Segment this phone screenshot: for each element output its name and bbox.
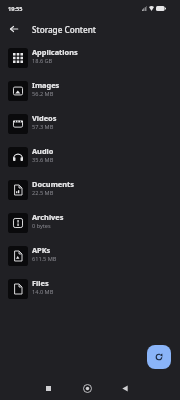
staticText: 18.6 GB [32, 57, 53, 65]
staticText: 14.0 MB [32, 288, 54, 296]
staticText: Videos [32, 113, 57, 123]
button[interactable]: Applications [0, 41, 180, 74]
staticText: 19:55 [8, 5, 23, 13]
button[interactable]: Refresh [147, 345, 171, 369]
staticText: 611.5 MB [32, 255, 57, 263]
staticText: Archives [32, 212, 64, 222]
button[interactable]: Back [2, 17, 26, 41]
staticText: 22.5 MB [32, 189, 54, 197]
staticText: Applications [32, 47, 78, 57]
staticText: Storage Content [32, 24, 96, 35]
button[interactable]: Archives [0, 206, 180, 239]
staticText: Documents [32, 179, 74, 189]
staticText: 0 bytes [32, 222, 51, 230]
button[interactable]: Files [0, 272, 180, 305]
staticText: 35.6 MB [32, 156, 54, 164]
staticText: Files [32, 278, 49, 288]
staticText: APKs [32, 245, 51, 255]
button[interactable]: Audio [0, 140, 180, 173]
button[interactable]: Videos [0, 107, 180, 140]
button[interactable]: Home [77, 378, 97, 398]
staticText: 57.3 MB [32, 123, 54, 131]
button[interactable]: Documents [0, 173, 180, 206]
button[interactable]: Images [0, 74, 180, 107]
button[interactable]: Back [115, 378, 135, 398]
button[interactable]: Recents [38, 378, 58, 398]
staticText: Images [32, 80, 60, 90]
button[interactable]: APKs [0, 239, 180, 272]
staticText: 56.2 MB [32, 90, 54, 98]
staticText: Audio [32, 146, 54, 156]
